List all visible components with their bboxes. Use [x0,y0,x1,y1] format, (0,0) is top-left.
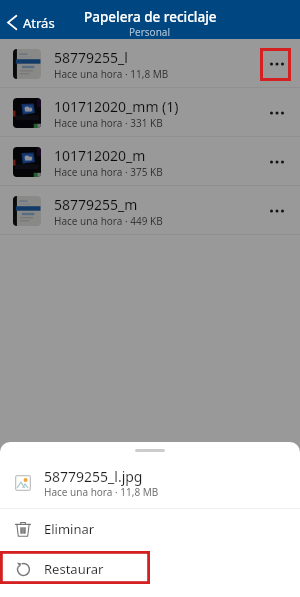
staticText: Hace una hora · 375 KB [54,165,163,179]
button[interactable]: Atrás [0,11,65,35]
staticText: Atrás [23,14,55,32]
button[interactable]: 101712020_mm (1) [0,88,300,137]
staticText: Hace una hora · 449 KB [54,214,163,228]
button[interactable]: Eliminar [0,509,300,549]
staticText: Hace una hora · 11,8 MB [54,67,169,81]
staticText: 101712020_mm (1) [54,97,179,116]
button[interactable]: 58779255_m [0,186,300,235]
staticText: Personal [129,25,171,39]
staticText: Hace una hora · 11,8 MB [44,485,159,499]
button[interactable]: More options [256,186,300,235]
staticText: 58779255_l [54,48,128,67]
staticText: Hace una hora · 331 KB [54,116,163,130]
button[interactable]: 58779255_l.jpg [0,451,300,508]
button[interactable]: Restaurar [0,549,300,589]
staticText: 58779255_m [54,195,138,214]
button[interactable]: More options [256,137,300,186]
button[interactable]: 101712020_m [0,137,300,186]
staticText: 58779255_l.jpg [44,467,143,486]
button[interactable]: 58779255_l [0,39,300,88]
staticText: Eliminar [44,520,95,538]
staticText: Papelera de reciclaje [84,8,217,26]
button[interactable]: More options [256,39,300,88]
staticText: 101712020_m [54,146,146,165]
staticText: Restaurar [44,560,104,578]
button[interactable]: More options [256,88,300,137]
